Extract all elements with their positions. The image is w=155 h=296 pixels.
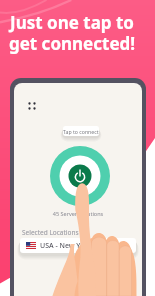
button[interactable]: USA - New York <box>20 238 136 253</box>
button[interactable]: Tap to connect <box>63 126 99 136</box>
staticText: USA - New York <box>40 241 92 251</box>
button[interactable]: Connect <box>50 146 110 206</box>
staticText: Just one tap to get connected! <box>0 11 144 55</box>
staticText: Tap to connect <box>63 128 99 135</box>
staticText: 45 Server Locations <box>14 210 142 217</box>
staticText: Selected Locations <box>22 228 79 237</box>
button[interactable]: Menu <box>24 97 40 113</box>
